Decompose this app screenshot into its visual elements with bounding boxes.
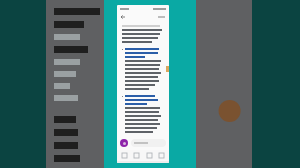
button[interactable]: Saved bbox=[145, 151, 154, 160]
button[interactable]: More options bbox=[157, 15, 166, 19]
button[interactable]: Home bbox=[120, 151, 129, 160]
button[interactable] bbox=[131, 139, 166, 147]
button[interactable]: Back bbox=[120, 14, 126, 20]
button[interactable]: Discover bbox=[132, 151, 141, 160]
button[interactable]: Account bbox=[120, 139, 128, 147]
button[interactable]: Profile bbox=[157, 151, 166, 160]
